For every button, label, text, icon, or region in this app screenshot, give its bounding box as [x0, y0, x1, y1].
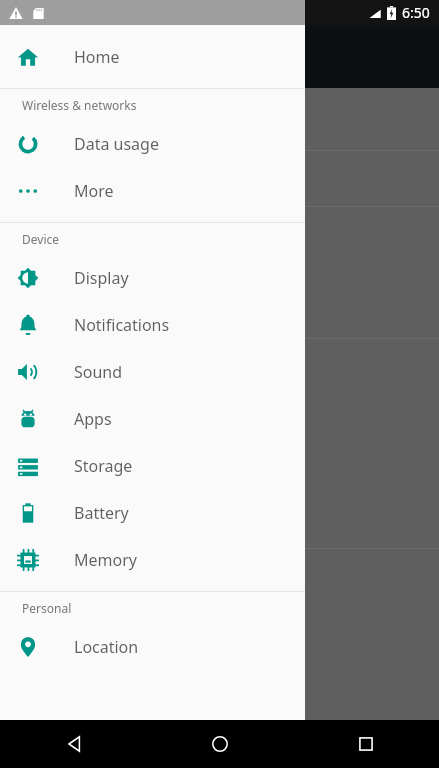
button[interactable]: Apps	[0, 395, 305, 442]
button[interactable]: Location	[0, 623, 305, 670]
button[interactable]: Sound	[0, 348, 305, 395]
button[interactable]: Battery	[0, 489, 305, 536]
staticText: Home	[74, 46, 120, 68]
button[interactable]: Display	[0, 254, 305, 301]
staticText: Location	[74, 636, 139, 658]
staticText: Device	[22, 231, 60, 247]
button[interactable]: Home	[0, 25, 305, 88]
staticText: Personal	[22, 600, 72, 616]
staticText: Memory	[74, 549, 137, 571]
staticText: More	[74, 180, 114, 202]
staticText: Storage	[74, 455, 133, 477]
button[interactable]: Memory	[0, 536, 305, 583]
staticText: Wireless & networks	[22, 97, 137, 113]
staticText: Sound	[74, 361, 123, 383]
button[interactable]: Recent apps	[293, 720, 439, 768]
button[interactable]: More	[0, 167, 305, 214]
button[interactable]: Data usage	[0, 120, 305, 167]
staticText: 6:50	[402, 3, 430, 22]
button[interactable]: Notifications	[0, 301, 305, 348]
staticText: Data usage	[74, 133, 159, 155]
button[interactable]: Home	[147, 720, 293, 768]
staticText: Battery	[74, 502, 129, 524]
staticText: Notifications	[74, 314, 170, 336]
button[interactable]: Back	[0, 720, 147, 768]
button[interactable]: Storage	[0, 442, 305, 489]
staticText: Apps	[74, 408, 112, 430]
staticText: Display	[74, 267, 129, 289]
